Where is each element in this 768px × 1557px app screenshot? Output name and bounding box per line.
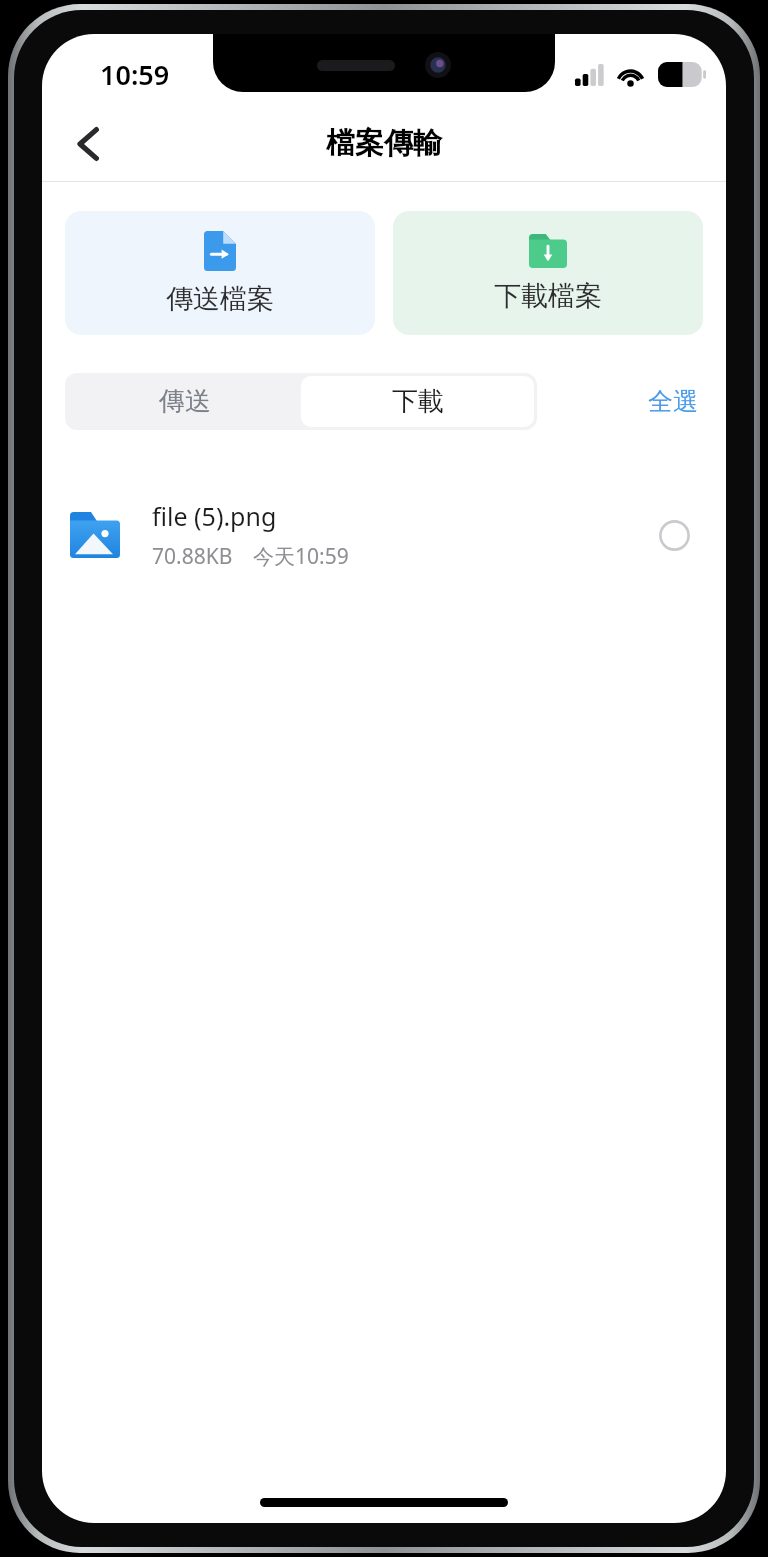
staticText: 下載 [392, 385, 444, 418]
staticText: 全選 [648, 386, 698, 417]
button[interactable]: 返回 [60, 116, 116, 172]
staticText: 今天10:59 [253, 542, 349, 571]
staticText: 70.88KB [152, 542, 233, 571]
button[interactable]: 選取檔案 [648, 509, 700, 561]
staticText: 10:59 [100, 56, 170, 93]
staticText: 傳送 [159, 385, 211, 418]
button[interactable]: 下載檔案 [393, 211, 703, 335]
staticText: file (5).png [152, 499, 277, 533]
button[interactable]: 全選 [642, 378, 704, 425]
button[interactable]: 傳送檔案 [65, 211, 375, 335]
staticText: 傳送檔案 [166, 282, 274, 316]
staticText: 檔案傳輸 [326, 125, 442, 162]
staticText: 下載檔案 [494, 279, 602, 313]
button[interactable]: 傳送 [68, 376, 301, 427]
button[interactable]: file (5).png [42, 487, 726, 583]
button[interactable]: 下載 [301, 376, 534, 427]
